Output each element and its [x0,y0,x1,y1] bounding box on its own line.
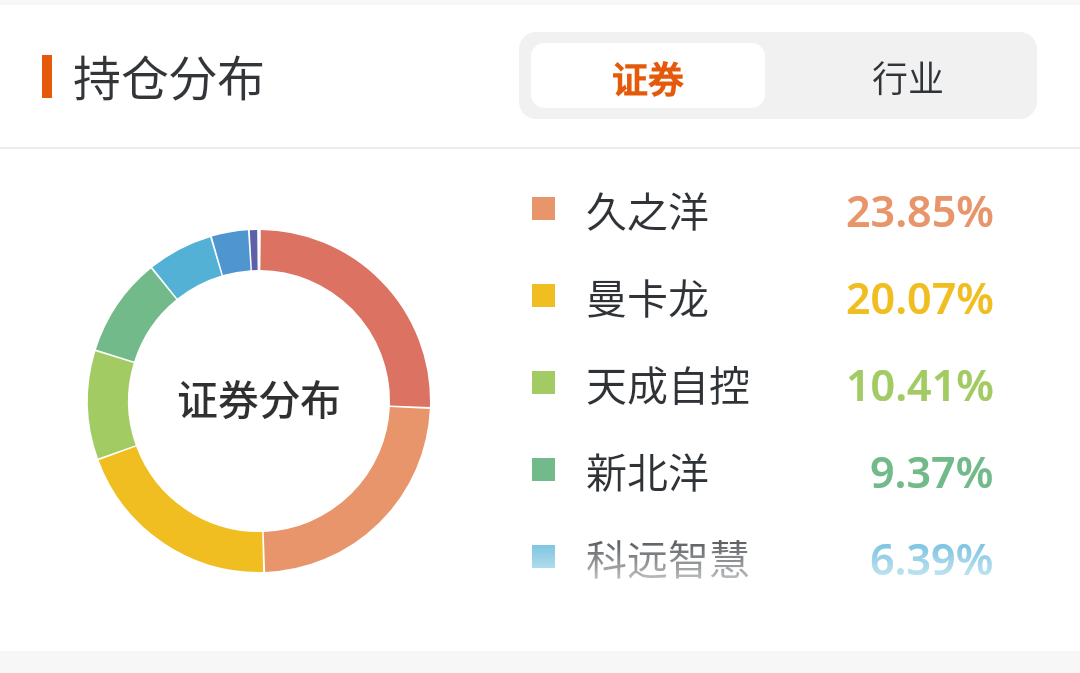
staticText: 曼卡龙 [586,266,709,325]
button[interactable]: 曼卡龙 [532,252,994,339]
staticText: 科远智慧 [586,527,750,586]
staticText: 天成自控 [586,353,750,412]
button[interactable]: 证券 [531,43,765,108]
button[interactable]: 新北洋 [532,426,994,513]
button[interactable]: 天成自控 [532,339,994,426]
staticText: 20.07% [846,268,994,327]
staticText: 久之洋 [586,179,709,238]
button[interactable]: 科远智慧 [532,513,994,600]
staticText: 证券分布 [177,367,341,426]
staticText: 行业 [872,50,945,102]
staticText: 持仓分布 [73,40,266,110]
staticText: 新北洋 [586,440,709,499]
staticText: 23.85% [846,181,994,240]
button[interactable]: 久之洋 [532,165,994,252]
staticText: 6.39% [870,529,994,588]
button[interactable]: 行业 [765,43,1037,108]
staticText: 10.41% [846,355,994,414]
staticText: 9.37% [870,442,994,501]
other: 证券分布饼图 [88,230,430,572]
staticText: 证券 [612,51,685,103]
